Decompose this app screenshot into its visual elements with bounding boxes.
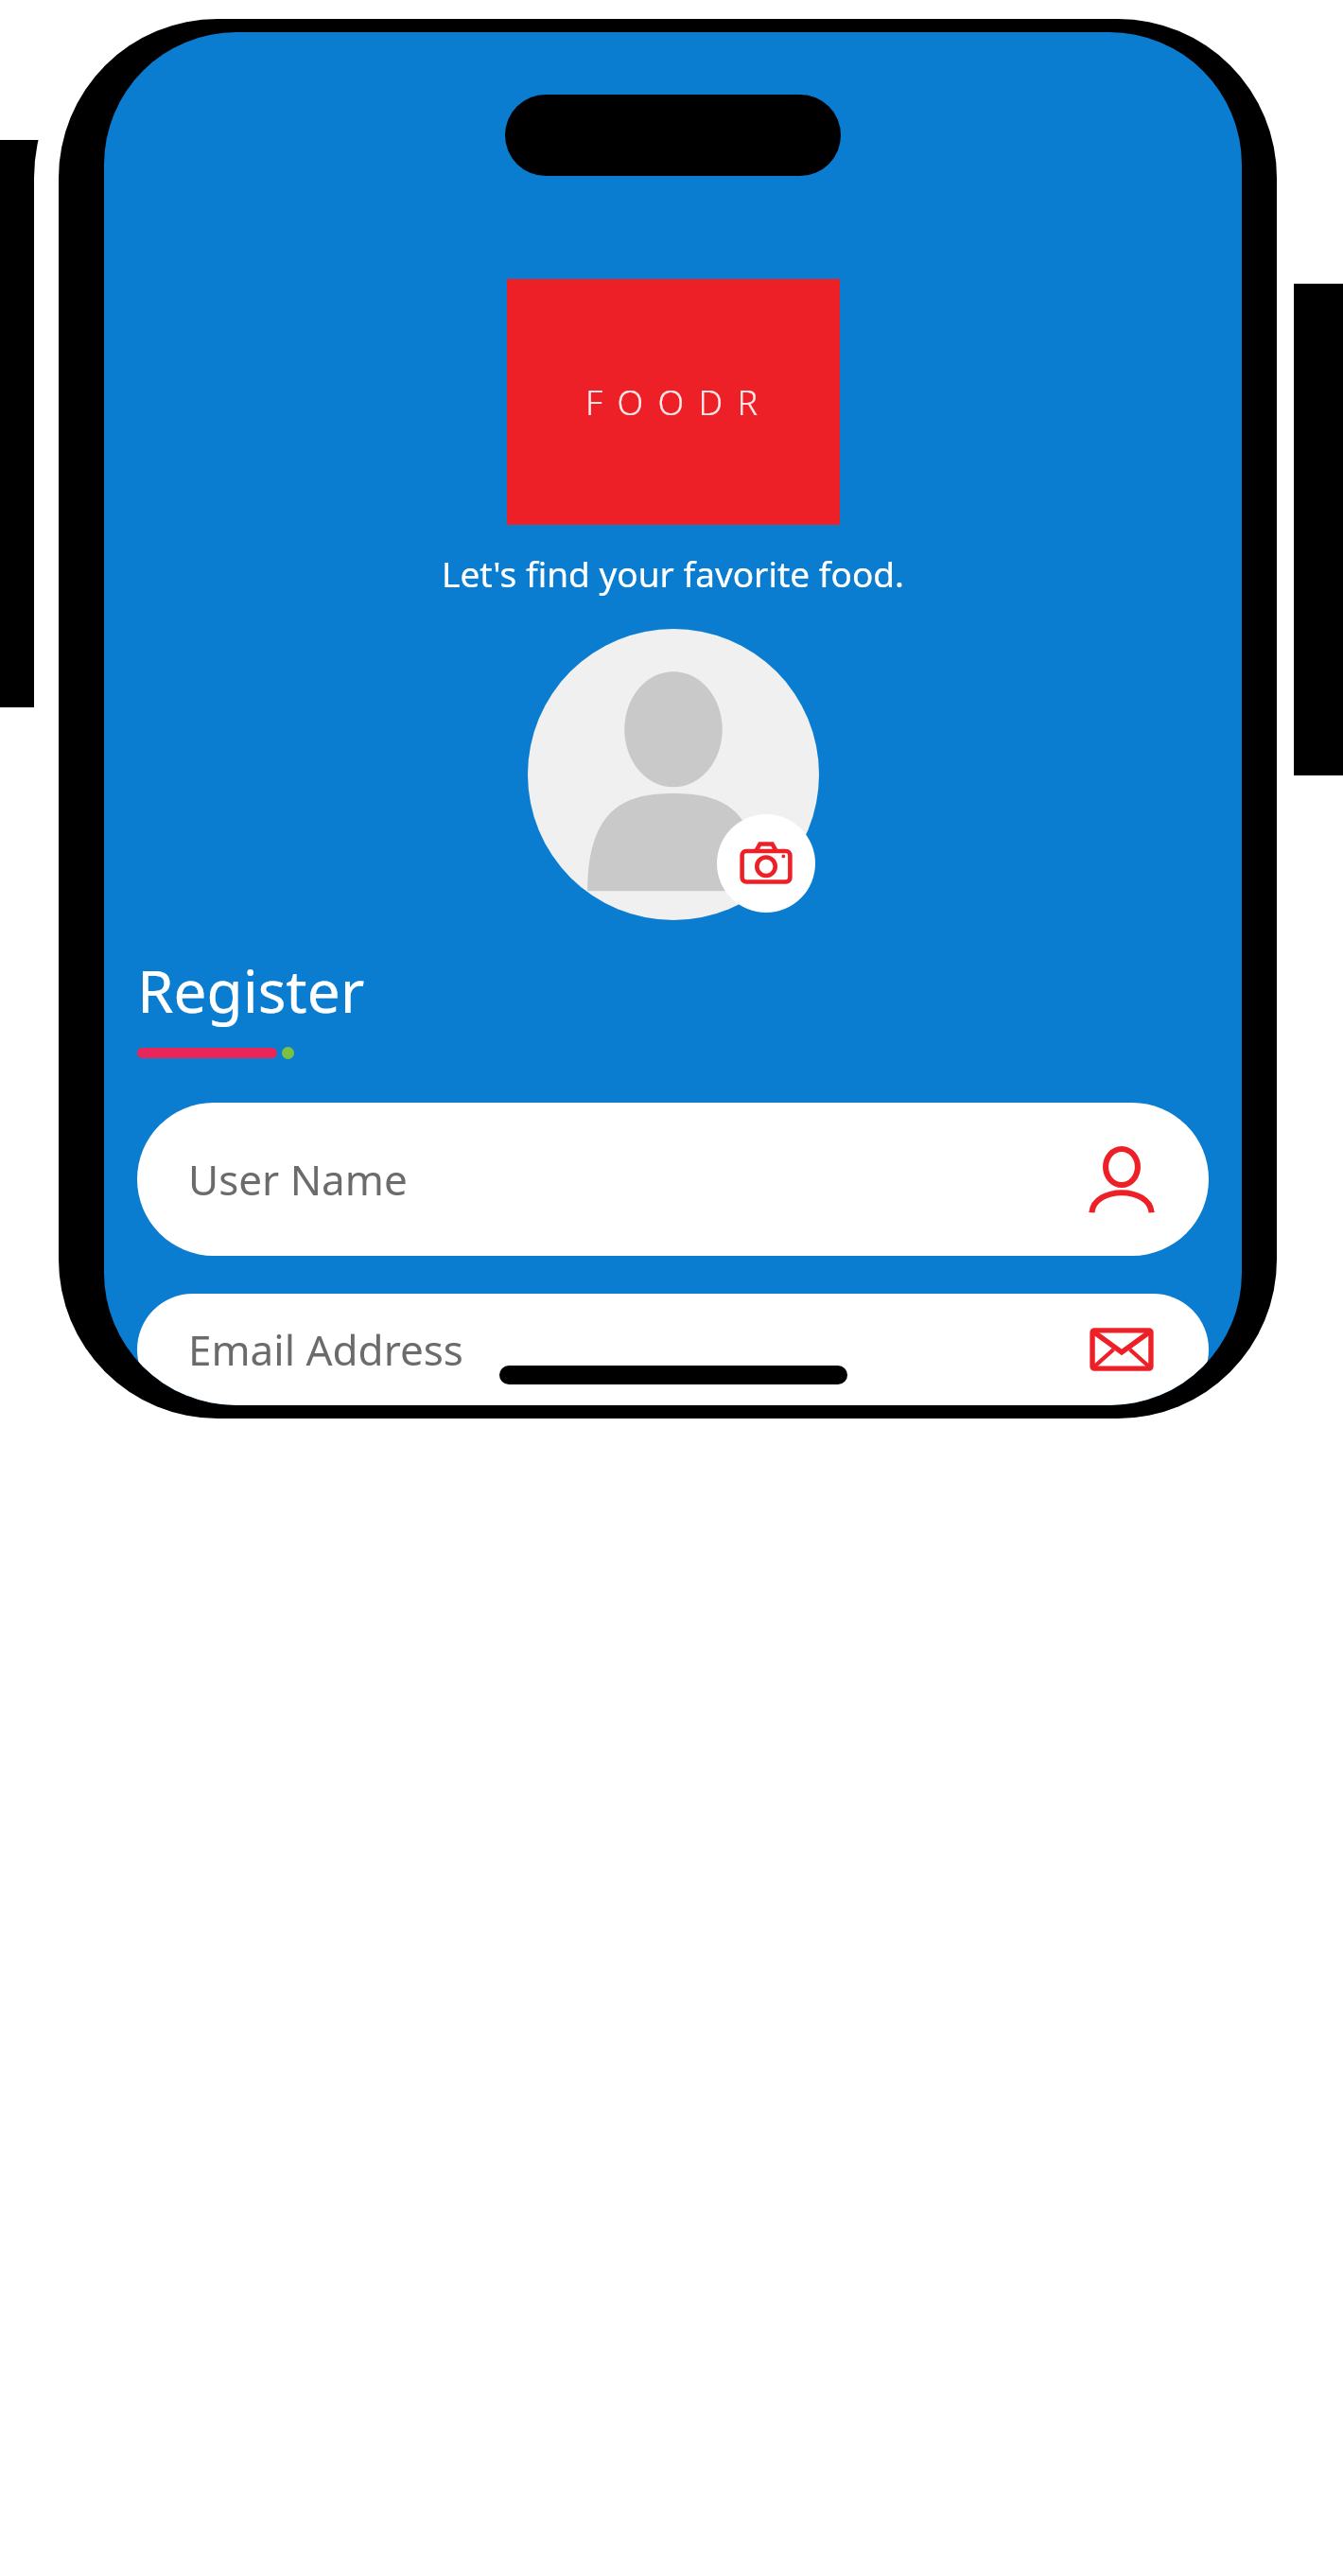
- staticText: Register: [137, 950, 365, 1030]
- button[interactable]: Email Address: [137, 1294, 1209, 1405]
- button[interactable]: Change profile photo: [528, 629, 819, 920]
- staticText: Email Address: [188, 1321, 463, 1378]
- staticText: F O O D R: [585, 379, 761, 426]
- staticText: Let's find your favorite food.: [442, 549, 904, 597]
- staticText: User Name: [188, 1151, 408, 1208]
- button[interactable]: User Name: [137, 1103, 1209, 1256]
